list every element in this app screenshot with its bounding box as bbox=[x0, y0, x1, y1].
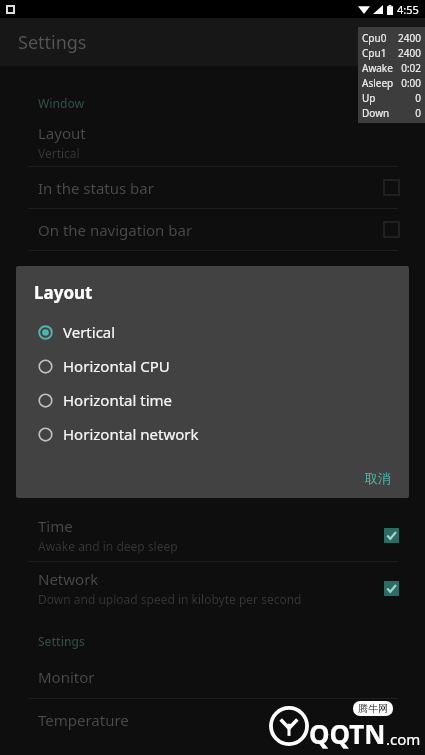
staticText: Monitor bbox=[38, 667, 95, 687]
staticText: Layout bbox=[34, 281, 93, 304]
button[interactable]: Temperature bbox=[0, 699, 425, 741]
staticText: Cpu0 bbox=[362, 31, 387, 45]
button[interactable]: 取消 bbox=[355, 464, 401, 492]
staticText: Vertical bbox=[63, 322, 116, 342]
staticText: Temperature bbox=[38, 710, 129, 730]
button[interactable]: Network bbox=[0, 562, 425, 614]
button[interactable]: On the navigation bar bbox=[0, 209, 425, 250]
staticText: 4:55 bbox=[397, 2, 419, 17]
staticText: Awake bbox=[362, 61, 393, 75]
staticText: 0:00 bbox=[394, 76, 421, 90]
button[interactable]: Horizontal CPU bbox=[16, 349, 409, 383]
staticText: Vertical bbox=[38, 145, 80, 161]
button[interactable]: Layout bbox=[0, 118, 425, 166]
staticText: Monitor bbox=[38, 262, 95, 282]
staticText: 0 bbox=[376, 91, 421, 105]
staticText: Horizontal network bbox=[63, 424, 199, 444]
staticText: 腾牛网 bbox=[358, 702, 388, 715]
staticText: Up bbox=[362, 91, 376, 105]
staticText: 取消 bbox=[365, 470, 391, 486]
staticText: Cpu1 bbox=[362, 46, 387, 60]
button[interactable]: Monitor bbox=[0, 656, 425, 698]
staticText: Network bbox=[38, 569, 99, 589]
staticText: Settings bbox=[18, 30, 87, 55]
staticText: Awake and in deep sleep bbox=[38, 538, 178, 554]
button[interactable]: Horizontal network bbox=[16, 417, 409, 451]
staticText: In the status bar bbox=[38, 178, 384, 198]
staticText: Time bbox=[38, 516, 73, 536]
staticText: Down bbox=[362, 106, 390, 120]
staticText: On the navigation bar bbox=[38, 220, 384, 240]
staticText: 2400 bbox=[387, 46, 421, 60]
staticText: .com bbox=[386, 729, 421, 749]
other: System monitor overlay bbox=[358, 27, 425, 123]
button[interactable]: Time bbox=[0, 509, 425, 561]
staticText: Asleep bbox=[362, 76, 394, 90]
button[interactable]: In the status bar bbox=[0, 167, 425, 208]
staticText: 0 bbox=[390, 106, 421, 120]
staticText: Horizontal time bbox=[63, 390, 173, 410]
button[interactable]: Monitor bbox=[0, 251, 425, 293]
staticText: Down and upload speed in kilobyte per se… bbox=[38, 591, 302, 607]
staticText: Layout bbox=[38, 123, 86, 143]
staticText: 2400 bbox=[387, 31, 421, 45]
staticText: Settings bbox=[38, 633, 85, 649]
staticText: 0:02 bbox=[393, 61, 421, 75]
button[interactable]: Vertical bbox=[16, 315, 409, 349]
button[interactable]: Horizontal time bbox=[16, 383, 409, 417]
staticText: Window bbox=[38, 95, 85, 111]
staticText: Horizontal CPU bbox=[63, 356, 170, 376]
staticText: QQTN bbox=[309, 716, 386, 751]
